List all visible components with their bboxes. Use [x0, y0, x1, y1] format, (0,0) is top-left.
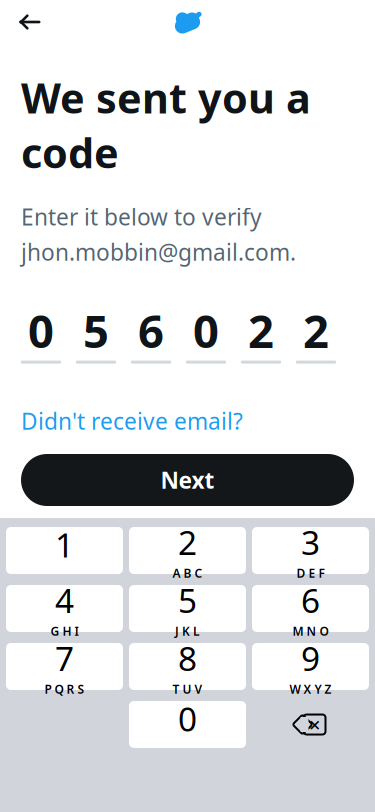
button[interactable]: 6: [252, 585, 369, 632]
staticText: W X Y Z: [289, 681, 331, 697]
button[interactable]: Next: [21, 454, 354, 506]
staticText: 5: [178, 578, 197, 622]
button[interactable]: 4: [6, 585, 123, 632]
staticText: T U V: [172, 681, 202, 697]
staticText: 6: [138, 300, 164, 361]
button[interactable]: 7: [6, 643, 123, 690]
staticText: Next: [160, 465, 214, 495]
staticText: ×: [309, 711, 320, 738]
staticText: jhon.mobbin@gmail.com.: [21, 237, 296, 267]
staticText: 1: [55, 522, 74, 567]
staticText: 2: [303, 300, 329, 361]
staticText: 0: [178, 696, 197, 741]
staticText: J K L: [175, 623, 200, 639]
staticText: A B C: [172, 565, 202, 581]
staticText: D E F: [296, 565, 324, 581]
button[interactable]: 9: [252, 643, 369, 690]
staticText: 8: [178, 636, 197, 680]
staticText: We sent you a code: [21, 70, 311, 180]
staticText: 2: [178, 520, 197, 564]
staticText: 0: [28, 300, 54, 361]
staticText: 2: [248, 300, 274, 361]
button[interactable]: 8: [129, 643, 246, 690]
button[interactable]: 3: [252, 527, 369, 574]
staticText: Didn't receive email?: [21, 406, 243, 436]
button[interactable]: Back: [13, 5, 47, 39]
staticText: Enter it below to verify: [21, 202, 262, 232]
staticText: 3: [301, 520, 320, 564]
staticText: M N O: [292, 623, 328, 639]
button[interactable]: 1: [6, 527, 123, 574]
staticText: 7: [55, 636, 74, 680]
button[interactable]: Delete: [252, 701, 369, 748]
staticText: 6: [301, 578, 320, 622]
button[interactable]: 5: [129, 585, 246, 632]
staticText: 9: [301, 636, 320, 680]
button[interactable]: Didn't receive email?: [21, 402, 243, 440]
staticText: G H I: [50, 623, 78, 639]
staticText: 5: [83, 300, 109, 361]
staticText: 4: [55, 578, 74, 622]
staticText: P Q R S: [44, 681, 84, 697]
staticText: 0: [193, 300, 219, 361]
button[interactable]: 0: [129, 701, 246, 748]
button[interactable]: 2: [129, 527, 246, 574]
